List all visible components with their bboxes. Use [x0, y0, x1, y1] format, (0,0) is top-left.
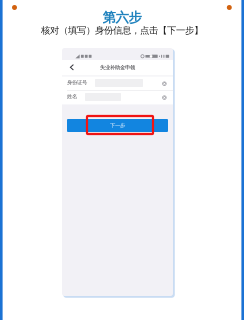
staticText: 姓名 — [67, 93, 77, 100]
button[interactable]: Back — [0, 0, 244, 320]
staticText: 失业补助金申领 — [100, 64, 135, 71]
staticText: 核对（填写）身份信息，点击【下一步】 — [41, 25, 203, 36]
staticText: 下一步 — [110, 122, 125, 129]
button[interactable]: 下一步 — [0, 0, 244, 320]
staticText: 第六步 — [102, 9, 141, 26]
staticText: 身份证号 — [67, 79, 87, 86]
